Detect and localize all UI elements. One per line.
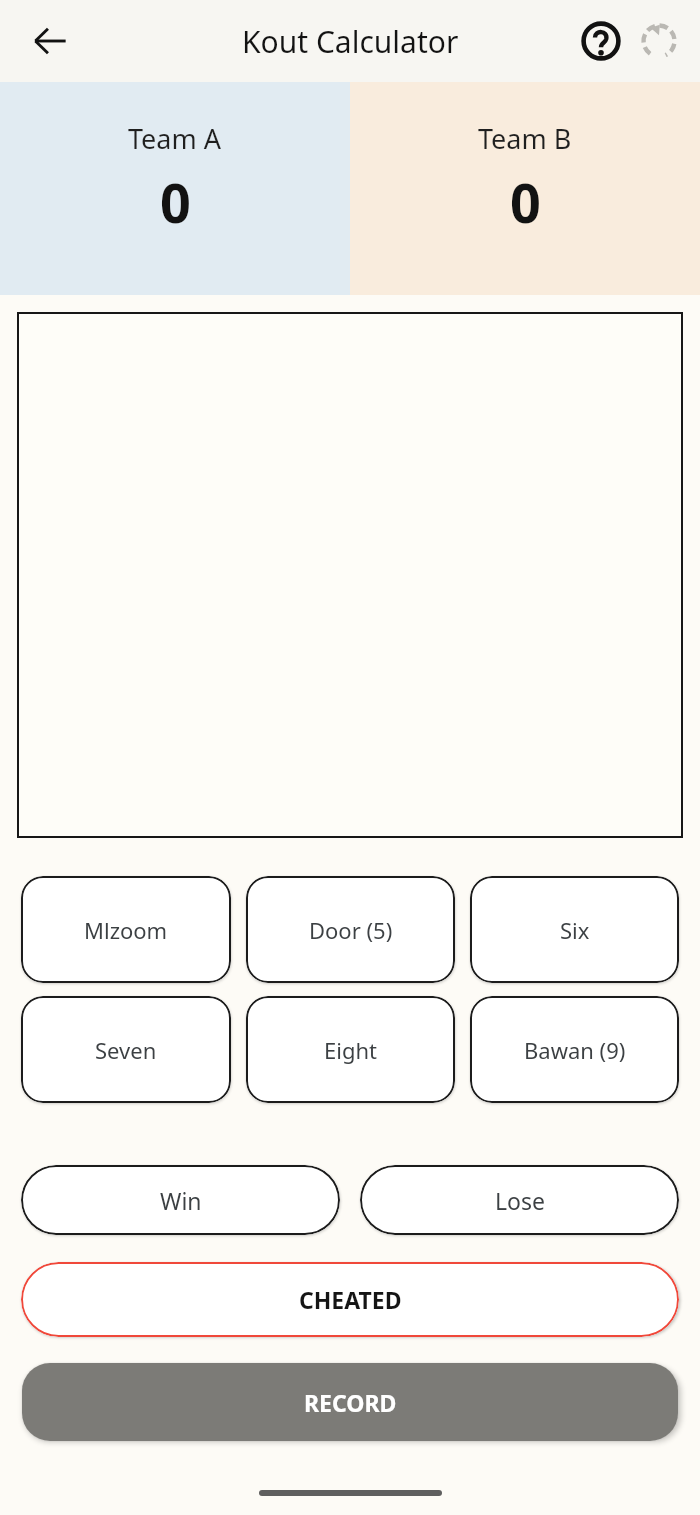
staticText: 0 xyxy=(510,165,541,239)
staticText: Bawan (9) xyxy=(524,1035,626,1065)
button[interactable]: Door (5) xyxy=(246,876,455,983)
button[interactable]: Back xyxy=(20,11,80,71)
staticText: Win xyxy=(160,1185,202,1216)
button[interactable]: Six xyxy=(470,876,679,983)
staticText: Kout Calculator xyxy=(242,21,459,62)
button[interactable]: Undo last entry xyxy=(630,12,688,70)
button[interactable]: Win xyxy=(21,1165,340,1235)
staticText: CHEATED xyxy=(299,1284,402,1315)
staticText: Seven xyxy=(95,1035,157,1065)
staticText: RECORD xyxy=(304,1387,397,1418)
button[interactable]: Team A xyxy=(0,82,350,295)
staticText: Mlzoom xyxy=(84,915,168,945)
button[interactable]: Bawan (9) xyxy=(470,996,679,1103)
staticText: Lose xyxy=(495,1185,545,1216)
button[interactable]: RECORD xyxy=(22,1363,678,1441)
staticText: Door (5) xyxy=(309,915,393,945)
button[interactable]: CHEATED xyxy=(21,1262,679,1337)
button[interactable]: Lose xyxy=(360,1165,679,1235)
button[interactable]: Help xyxy=(572,12,630,70)
staticText: Eight xyxy=(324,1035,377,1065)
button[interactable]: Team B xyxy=(350,82,700,295)
staticText: Team A xyxy=(128,120,222,157)
staticText: Six xyxy=(560,915,590,945)
staticText: Team B xyxy=(478,120,572,157)
button[interactable] xyxy=(17,312,683,838)
button[interactable]: Seven xyxy=(21,996,231,1103)
button[interactable]: Mlzoom xyxy=(21,876,231,983)
button[interactable]: Eight xyxy=(246,996,455,1103)
staticText: 0 xyxy=(160,165,191,239)
